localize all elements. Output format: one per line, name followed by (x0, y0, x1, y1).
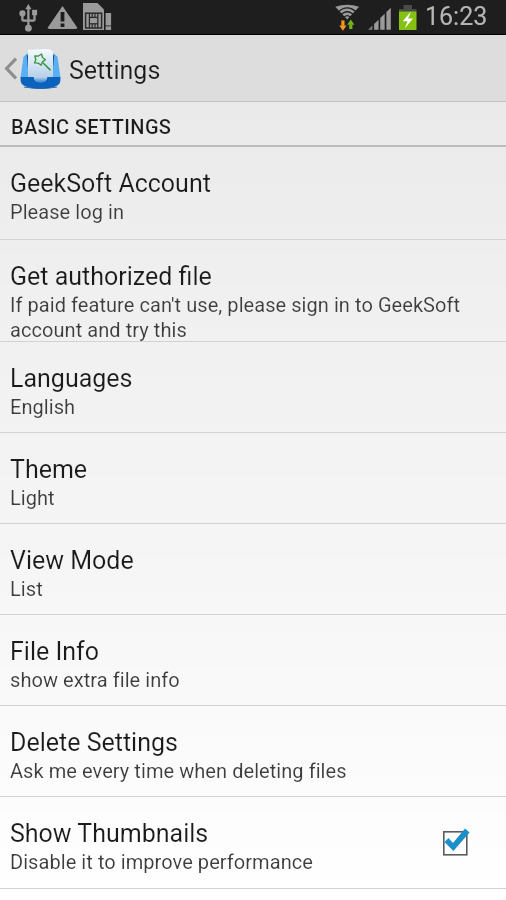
staticText: List (10, 577, 43, 600)
staticText: Get authorized file (10, 262, 212, 291)
staticText: Show Thumbnails (10, 819, 209, 848)
staticText: Light (10, 486, 55, 509)
staticText: 16:23 (425, 2, 488, 31)
staticText: BASIC SETTINGS (11, 115, 172, 138)
button[interactable]: File Info (0, 615, 506, 706)
staticText: show extra file info (10, 668, 180, 691)
button[interactable]: Languages (0, 342, 506, 433)
button[interactable]: Get authorized file (0, 240, 506, 342)
staticText: Ask me every time when deleting files (10, 759, 347, 782)
staticText: GeekSoft Account (10, 169, 211, 198)
button[interactable]: Theme (0, 433, 506, 524)
staticText: English (10, 395, 76, 418)
staticText: Settings (69, 56, 161, 85)
staticText: Delete Settings (10, 728, 178, 757)
staticText: Languages (10, 364, 133, 393)
staticText: File Info (10, 637, 99, 666)
staticText: If paid feature can't use, please sign i… (10, 293, 492, 342)
button[interactable]: Navigate up (0, 35, 61, 102)
staticText: Disable it to improve performance (10, 850, 313, 873)
button[interactable]: Show Thumbnails (0, 797, 506, 889)
staticText: View Mode (10, 546, 134, 575)
button[interactable]: GeekSoft Account (0, 147, 506, 240)
staticText: Please log in (10, 200, 125, 223)
button[interactable]: View Mode (0, 524, 506, 615)
button[interactable]: Show Thumbnails toggle (443, 830, 472, 856)
button[interactable]: Delete Settings (0, 706, 506, 797)
staticText: Theme (10, 455, 88, 484)
